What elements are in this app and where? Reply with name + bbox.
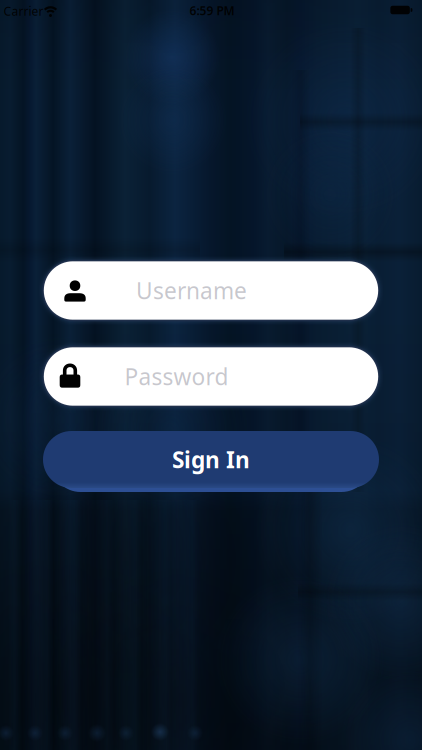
staticText: 6:59 PM xyxy=(189,2,234,18)
staticText: Username xyxy=(136,275,247,305)
button[interactable]: Username xyxy=(43,260,379,320)
staticText: Sign In xyxy=(172,444,250,474)
button[interactable]: Sign In xyxy=(43,431,379,488)
staticText: Carrier xyxy=(3,3,43,19)
staticText: Password xyxy=(124,361,228,391)
button[interactable]: Password xyxy=(43,346,379,406)
